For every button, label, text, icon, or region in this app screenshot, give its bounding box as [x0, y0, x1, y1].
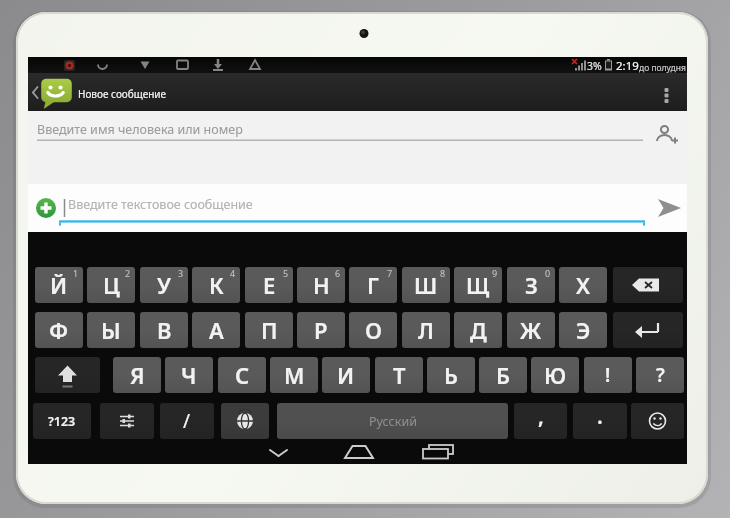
button[interactable]: Щ [454, 267, 502, 303]
staticText: 6 [335, 267, 341, 279]
staticText: 8 [440, 267, 446, 279]
staticText: С [235, 360, 250, 390]
staticText: Ч [181, 360, 197, 390]
button[interactable]: С [218, 357, 266, 393]
button[interactable]: А [192, 312, 240, 348]
staticText: Я [130, 360, 145, 390]
staticText: З [525, 270, 538, 300]
button[interactable] [100, 403, 154, 439]
button[interactable] [631, 403, 684, 439]
button[interactable]: Д [454, 312, 502, 348]
staticText: Х [576, 270, 591, 300]
staticText: К [209, 270, 224, 300]
button[interactable]: / [160, 403, 214, 439]
staticText: ! [605, 362, 611, 388]
staticText: Ц [103, 270, 120, 300]
button[interactable]: Ч [165, 357, 213, 393]
staticText: Ж [520, 315, 542, 345]
staticText: Ф [49, 315, 69, 345]
button[interactable]: Ш [402, 267, 450, 303]
button[interactable]: Ж [507, 312, 555, 348]
button[interactable]: Л [402, 312, 450, 348]
button[interactable] [60, 184, 648, 232]
staticText: В [157, 315, 172, 345]
button[interactable]: ?123 [33, 403, 91, 439]
button[interactable]: ! [584, 357, 632, 393]
button[interactable] [264, 443, 294, 463]
staticText: Русский [369, 413, 417, 430]
staticText: 9 [492, 267, 498, 279]
staticText: Н [313, 270, 330, 300]
staticText: Д [470, 315, 487, 345]
button[interactable]: Б [479, 357, 527, 393]
staticText: . [597, 403, 603, 431]
button[interactable]: Т [375, 357, 423, 393]
button[interactable]: Ф [35, 312, 83, 348]
button[interactable] [423, 443, 457, 463]
button[interactable] [613, 267, 683, 303]
button[interactable] [221, 403, 269, 439]
staticText: О [365, 315, 382, 345]
staticText: , [538, 403, 544, 431]
button[interactable]: Р [297, 312, 345, 348]
staticText: 3% [587, 59, 602, 73]
button[interactable]: Е [245, 267, 293, 303]
staticText: П [261, 315, 278, 345]
button[interactable]: О [349, 312, 397, 348]
button[interactable]: Я [113, 357, 161, 393]
button[interactable] [652, 77, 680, 109]
staticText: Новое сообщение [78, 87, 167, 101]
staticText: Ь [444, 360, 458, 390]
button[interactable]: . [573, 403, 627, 439]
staticText: Е [263, 270, 276, 300]
button[interactable] [32, 194, 60, 222]
staticText: 1 [73, 267, 79, 279]
button[interactable]: Г [349, 267, 397, 303]
staticText: 4 [230, 267, 236, 279]
staticText: / [183, 408, 191, 434]
staticText: 7 [387, 267, 393, 279]
staticText: 5 [283, 267, 289, 279]
button[interactable]: , [514, 403, 567, 439]
staticText: Введите текстовое сообщение [68, 196, 253, 213]
staticText: Ш [414, 270, 438, 300]
button[interactable]: Ю [531, 357, 579, 393]
button[interactable] [341, 443, 371, 463]
button[interactable]: Ь [427, 357, 475, 393]
staticText: У [157, 270, 171, 300]
staticText: Ю [544, 360, 567, 390]
staticText: 2:19 [616, 58, 639, 74]
button[interactable] [648, 188, 687, 228]
button[interactable]: М [270, 357, 318, 393]
button[interactable]: У [140, 267, 188, 303]
button[interactable]: В [140, 312, 188, 348]
staticText: И [337, 360, 355, 390]
button[interactable] [35, 357, 100, 393]
button[interactable] [28, 73, 78, 111]
staticText: Щ [466, 270, 490, 300]
button[interactable]: Э [559, 312, 607, 348]
button[interactable]: Ц [87, 267, 135, 303]
button[interactable]: Введите имя человека или номер [28, 111, 687, 184]
button[interactable]: И [322, 357, 370, 393]
staticText: Г [367, 270, 379, 300]
staticText: М [284, 360, 305, 390]
staticText: Э [576, 315, 591, 345]
button[interactable]: Ы [87, 312, 135, 348]
staticText: Б [496, 360, 510, 390]
button[interactable]: З [507, 267, 555, 303]
button[interactable]: Русский [277, 403, 508, 439]
staticText: Р [314, 315, 328, 345]
button[interactable]: Й [35, 267, 83, 303]
button[interactable]: К [192, 267, 240, 303]
staticText: Ы [101, 315, 121, 345]
button[interactable]: Х [559, 267, 607, 303]
staticText: А [209, 315, 224, 345]
staticText: ? [656, 362, 665, 388]
button[interactable]: Н [297, 267, 345, 303]
staticText: 3 [178, 267, 184, 279]
button[interactable]: П [245, 312, 293, 348]
button[interactable] [613, 312, 683, 348]
staticText: 0 [545, 267, 551, 279]
button[interactable]: ? [636, 357, 684, 393]
